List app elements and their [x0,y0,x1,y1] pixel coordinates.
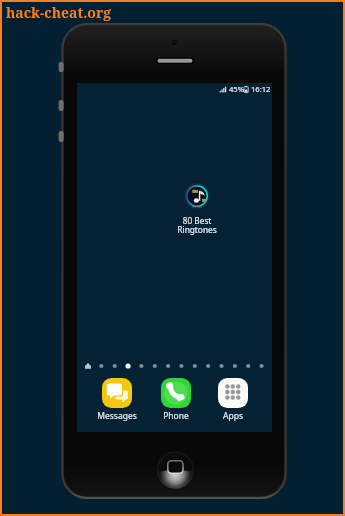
button[interactable]: Apps [210,378,256,422]
staticText: Apps [223,410,243,422]
staticText: Phone [163,410,189,422]
button[interactable]: Phone [153,378,199,422]
staticText: 80 Best Ringtones [177,215,217,235]
staticText: 16:12 [251,84,271,94]
button[interactable]: Messages [94,378,140,422]
staticText: hack-cheat.org [6,3,112,22]
button[interactable]: 80 Best Ringtones [168,183,225,235]
staticText: Messages [97,410,137,422]
staticText: 45% [229,84,244,94]
